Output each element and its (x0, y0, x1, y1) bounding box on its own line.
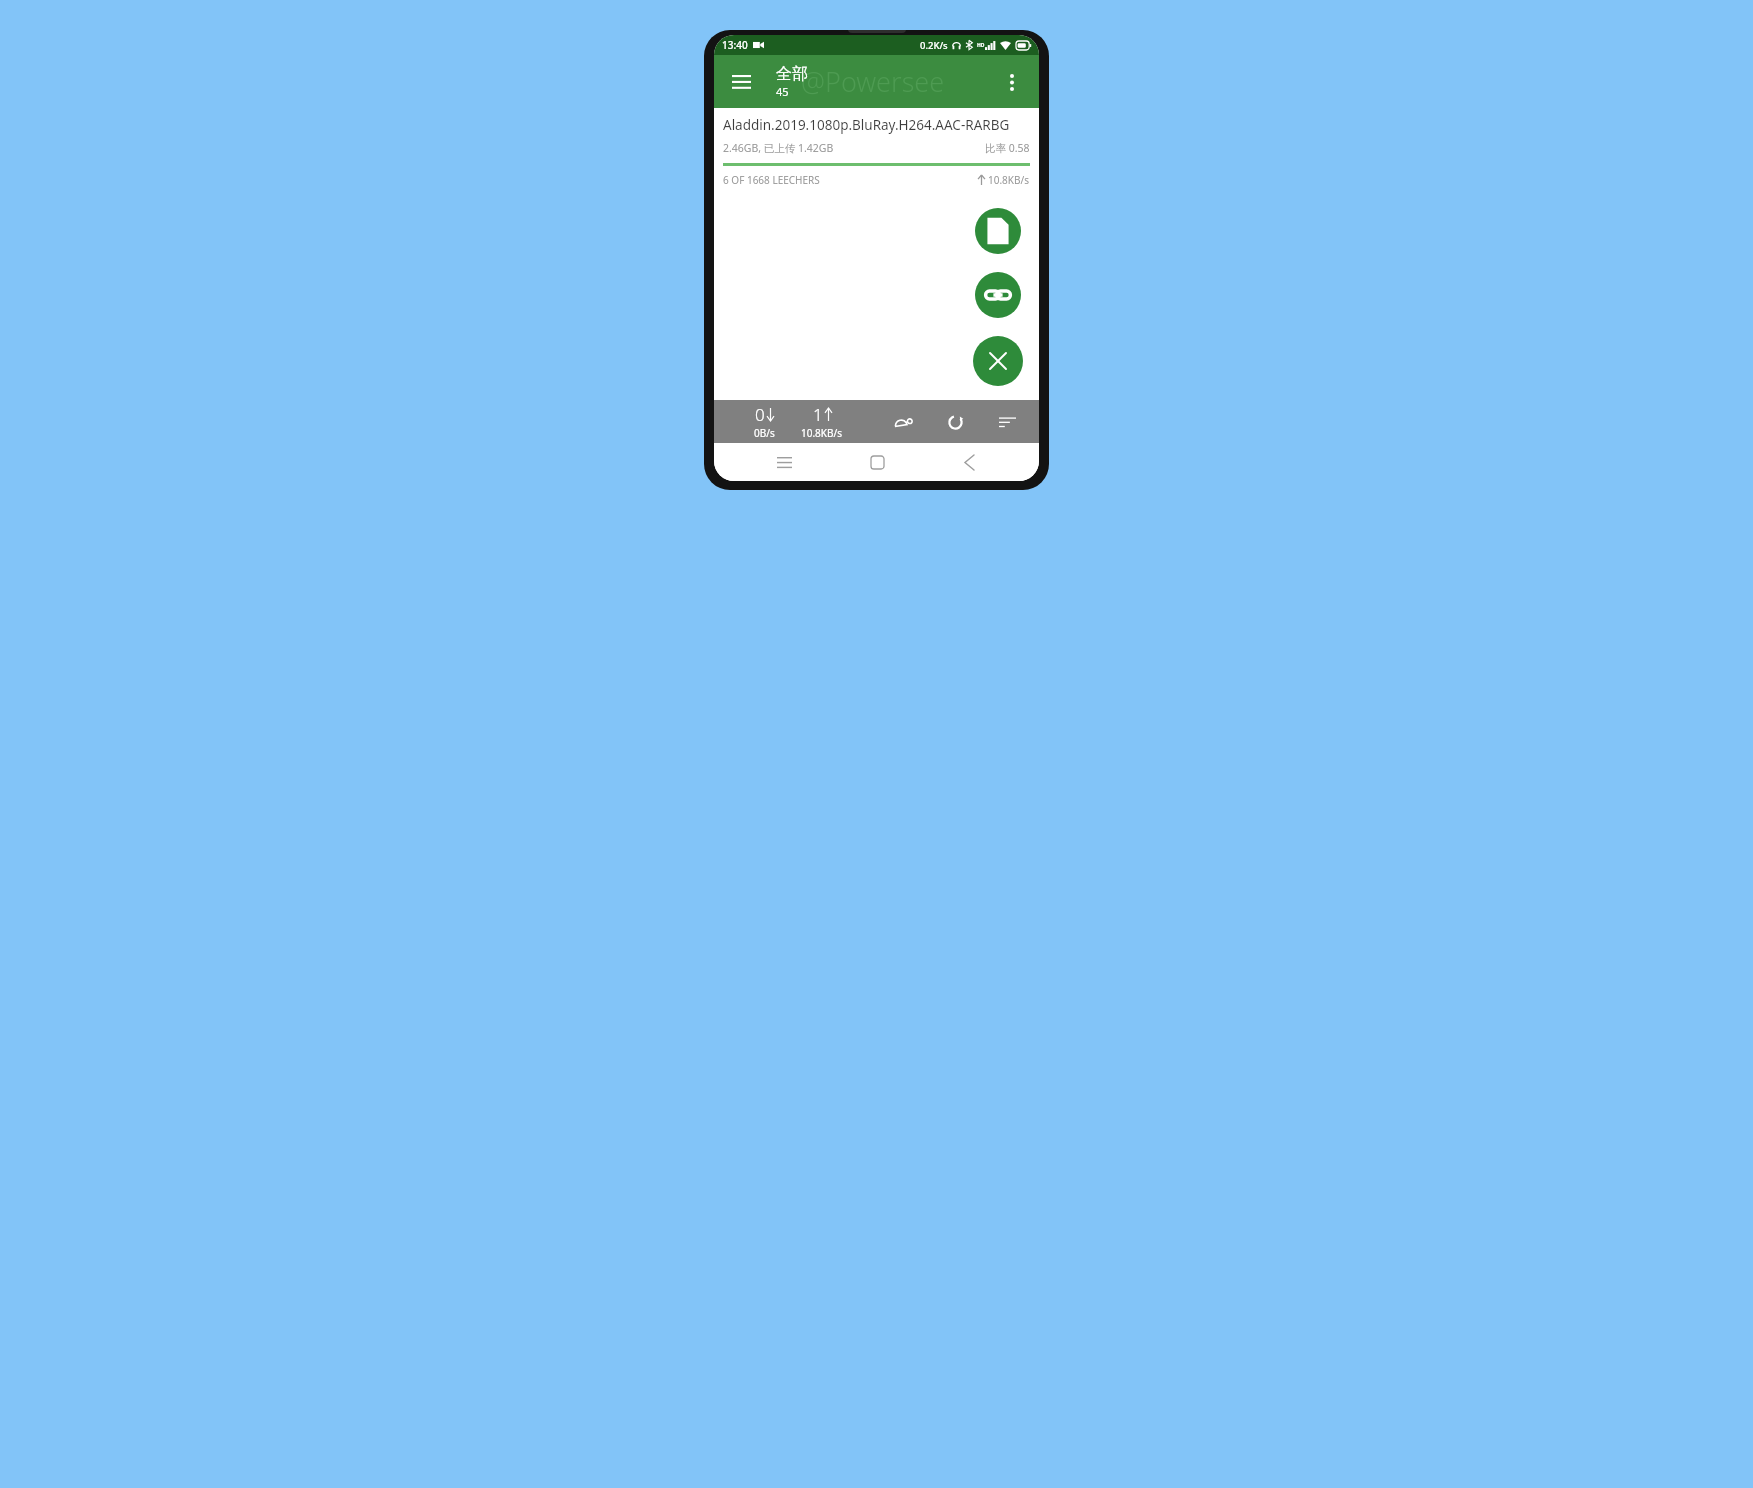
staticText: 10.8KB/s (988, 173, 1030, 187)
button[interactable]: Refresh (937, 404, 973, 440)
button[interactable]: Close menu (973, 336, 1023, 386)
button[interactable]: Home (855, 443, 899, 481)
button[interactable]: Back (947, 443, 991, 481)
staticText: 0.2K/s (920, 39, 948, 52)
staticText: 2.46GB, 已上传 1.42GB (723, 141, 834, 155)
staticText: @Powersee (801, 63, 945, 100)
button[interactable]: Open navigation menu (724, 65, 758, 99)
staticText: 全部 (776, 64, 808, 84)
staticText: 45 (776, 84, 789, 99)
button[interactable]: Add magnet link (975, 272, 1021, 318)
staticText: 6 OF 1668 LEECHERS (723, 173, 820, 187)
button[interactable]: Recent apps (762, 443, 806, 481)
button[interactable]: Sort (989, 404, 1025, 440)
staticText: 0B/s (754, 426, 775, 440)
button[interactable]: Add torrent file (975, 208, 1021, 254)
staticText: Aladdin.2019.1080p.BluRay.H264.AAC-RARBG (723, 116, 1010, 134)
button[interactable]: 全部 (776, 64, 808, 99)
staticText: 比率 0.58 (985, 141, 1030, 155)
staticText: 0 (755, 403, 765, 426)
button[interactable]: More options (995, 65, 1029, 99)
staticText: HD (977, 42, 985, 49)
staticText: 10.8KB/s (801, 426, 843, 440)
button[interactable]: Aladdin.2019.1080p.BluRay.H264.AAC-RARBG (714, 108, 1039, 194)
staticText: 1 (813, 403, 823, 426)
staticText: 13:40 (722, 38, 748, 52)
button[interactable]: Alternative speed limits (885, 404, 921, 440)
